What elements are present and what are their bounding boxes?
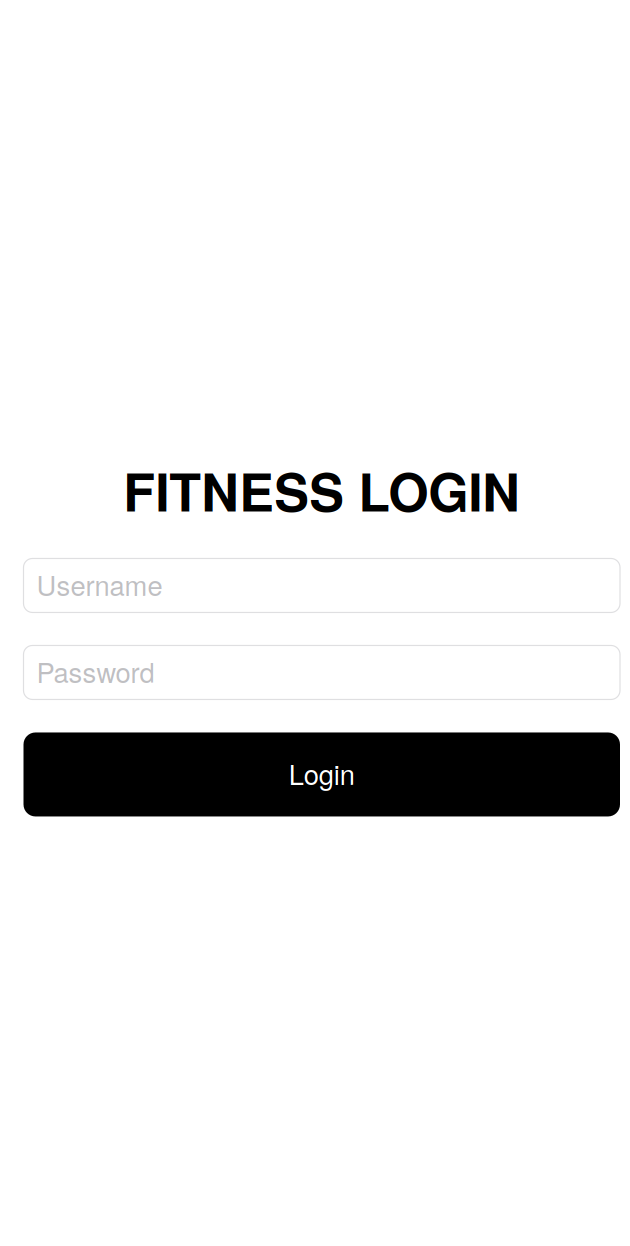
staticText: Username <box>36 565 162 604</box>
staticText: FITNESS LOGIN <box>123 453 520 527</box>
staticText: Login <box>289 754 355 793</box>
staticText: Password <box>36 652 154 691</box>
button[interactable]: Username <box>23 558 620 612</box>
button[interactable]: Login <box>23 732 620 816</box>
button[interactable]: Password <box>23 645 620 699</box>
